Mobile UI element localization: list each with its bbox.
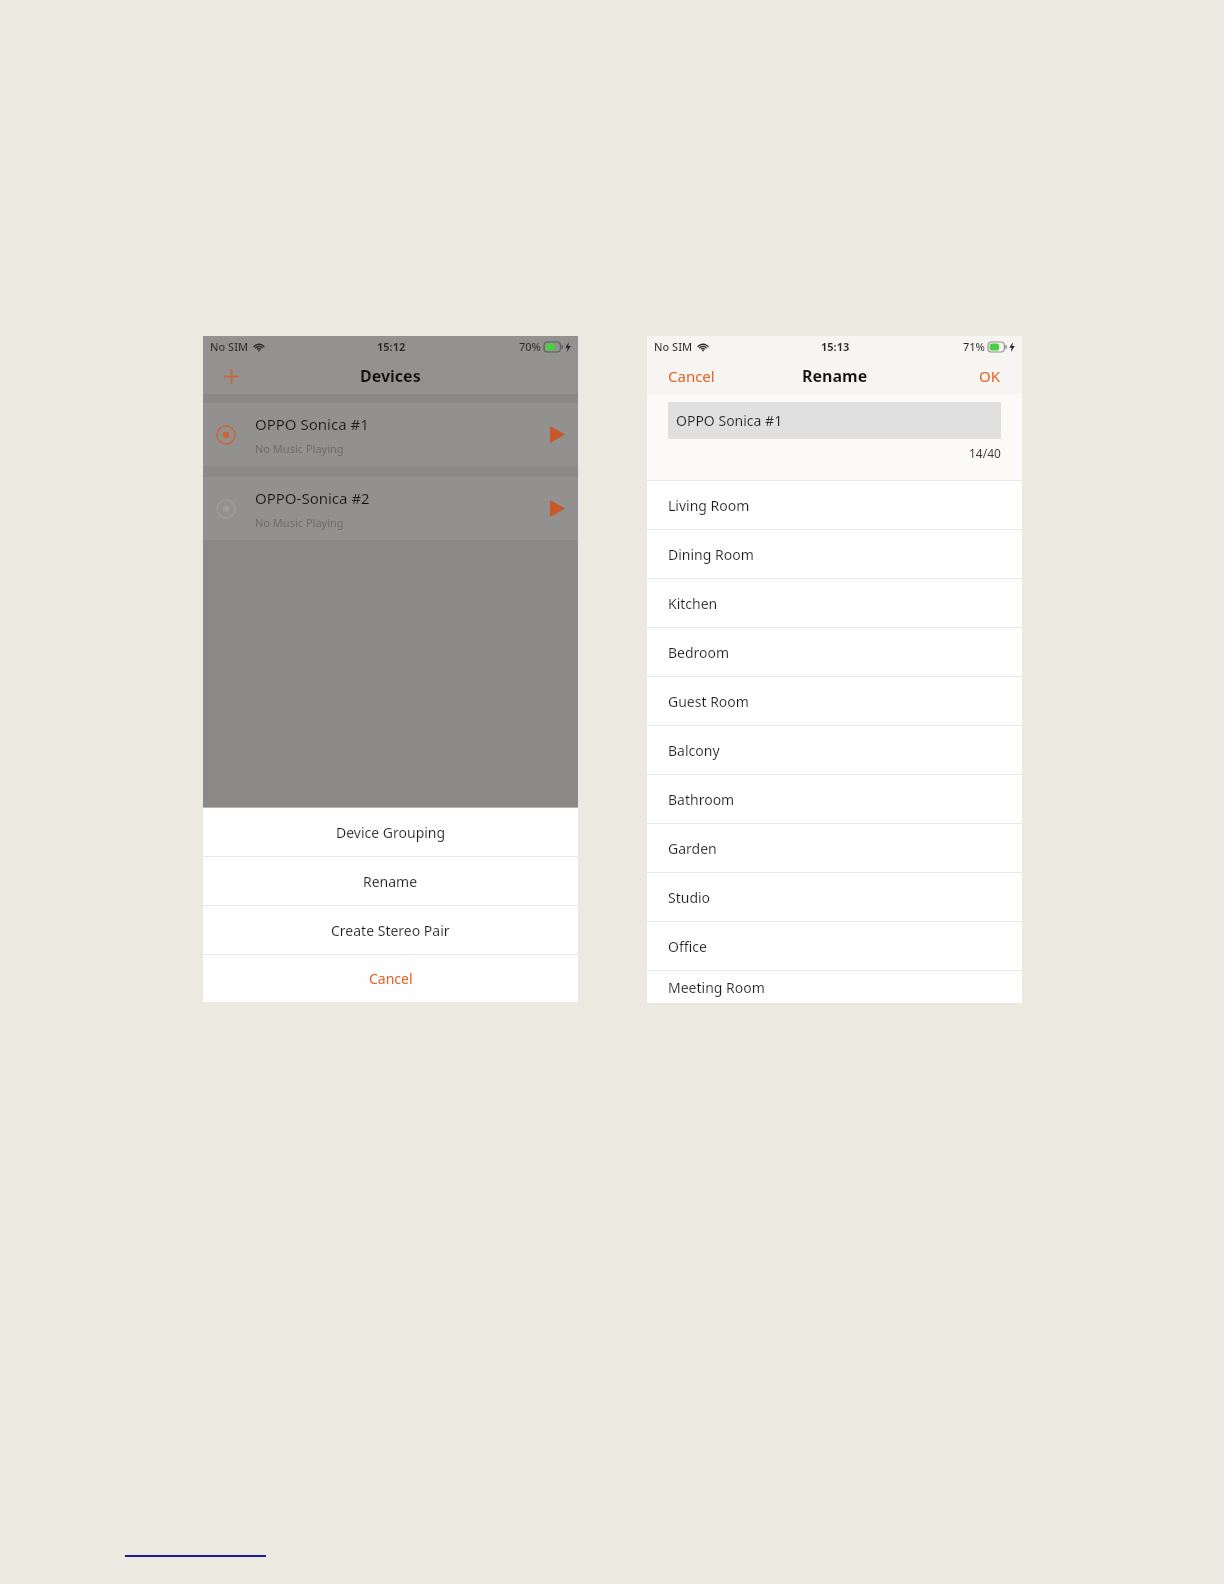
staticText: Balcony	[668, 741, 720, 760]
staticText: Device Grouping	[336, 823, 446, 842]
button[interactable]: Bathroom	[647, 775, 1022, 824]
staticText: No SIM	[654, 339, 693, 354]
staticText: OK	[979, 366, 1001, 386]
staticText: Devices	[360, 365, 421, 387]
staticText: 15:13	[821, 339, 850, 354]
staticText: Kitchen	[668, 594, 718, 613]
button[interactable]: Balcony	[647, 726, 1022, 775]
staticText: Guest Room	[668, 692, 749, 711]
button[interactable]: Cancel	[203, 955, 578, 1002]
staticText: Bathroom	[668, 790, 735, 809]
button[interactable]: Living Room	[647, 481, 1022, 530]
staticText: Studio	[668, 888, 711, 907]
staticText: No Music Playing	[255, 515, 344, 530]
staticText: OPPO Sonica #1	[255, 414, 369, 434]
staticText: Meeting Room	[668, 978, 765, 997]
staticText: Rename	[802, 365, 868, 387]
staticText: OPPO-Sonica #2	[255, 488, 370, 508]
button[interactable]: Create Stereo Pair	[203, 906, 578, 954]
staticText: Living Room	[668, 496, 750, 515]
staticText: Garden	[668, 839, 717, 858]
button[interactable]: OK	[958, 359, 1022, 393]
button[interactable]: Bedroom	[647, 628, 1022, 677]
staticText: Cancel	[369, 969, 413, 988]
staticText: Create Stereo Pair	[331, 921, 450, 940]
button[interactable]: Meeting Room	[647, 971, 1022, 1003]
button[interactable]: Cancel	[647, 359, 736, 393]
button[interactable]: Rename	[203, 857, 578, 905]
button[interactable]: Studio	[647, 873, 1022, 922]
staticText: 14/40	[969, 445, 1001, 461]
staticText: Bedroom	[668, 643, 730, 662]
button[interactable]: Device Grouping	[203, 808, 578, 856]
button[interactable]: OPPO Sonica #1	[203, 403, 578, 466]
button[interactable]: Dining Room	[647, 530, 1022, 579]
staticText: 70%	[519, 339, 541, 354]
staticText: No Music Playing	[255, 441, 344, 456]
staticText: 71%	[963, 339, 985, 354]
staticText: OPPO Sonica #1	[676, 411, 783, 430]
button[interactable]: OPPO-Sonica #2	[203, 477, 578, 540]
button[interactable]: Garden	[647, 824, 1022, 873]
staticText: Rename	[363, 872, 418, 891]
staticText: 15:12	[377, 339, 406, 354]
button[interactable]: OPPO Sonica #1	[668, 402, 1001, 439]
button[interactable]: Kitchen	[647, 579, 1022, 628]
staticText: Cancel	[668, 366, 715, 386]
button[interactable]: Office	[647, 922, 1022, 971]
staticText: Office	[668, 937, 707, 956]
button[interactable]: Add device	[218, 363, 244, 389]
button[interactable]: Guest Room	[647, 677, 1022, 726]
staticText: No SIM	[210, 339, 249, 354]
staticText: Dining Room	[668, 545, 754, 564]
